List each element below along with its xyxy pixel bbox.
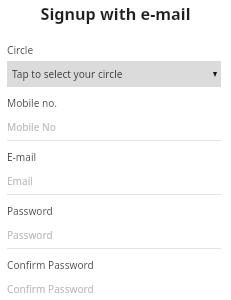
staticText: Password: [7, 228, 53, 242]
staticText: Mobile no.: [7, 96, 58, 110]
staticText: Circle: [7, 43, 34, 57]
button[interactable]: Confirm Password: [7, 277, 221, 300]
staticText: Confirm Password: [7, 282, 94, 296]
staticText: Email: [7, 174, 33, 188]
button[interactable]: Password: [7, 223, 221, 249]
staticText: E-mail: [7, 150, 37, 164]
staticText: Tap to select your circle: [12, 67, 123, 81]
button[interactable]: E-mail: [7, 169, 221, 195]
staticText: Signup with e-mail: [0, 3, 231, 25]
button[interactable]: Mobile no.: [7, 115, 221, 141]
other: Show circle options: [213, 72, 217, 77]
staticText: Confirm Password: [7, 258, 94, 272]
button[interactable]: Tap to select your circle: [7, 61, 221, 87]
staticText: Password: [7, 204, 53, 218]
staticText: Mobile No: [7, 120, 56, 134]
